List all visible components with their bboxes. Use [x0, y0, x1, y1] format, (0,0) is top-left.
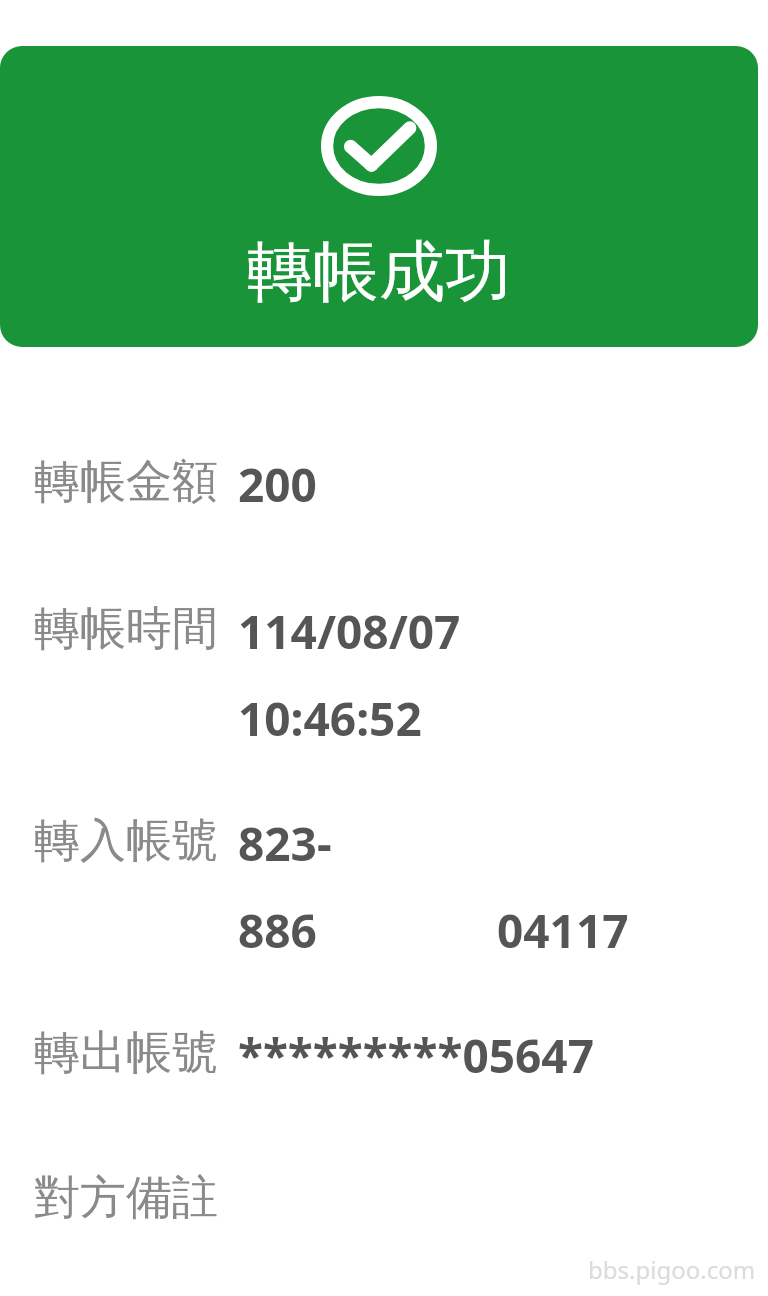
staticText: bbs.pigoo.com	[588, 1253, 756, 1286]
staticText: 轉帳成功	[247, 230, 511, 313]
staticText: 轉入帳號	[34, 812, 218, 870]
staticText: 轉出帳號	[34, 1024, 218, 1082]
staticText: 200	[238, 453, 317, 516]
button[interactable]: 轉帳金額	[34, 453, 740, 516]
button[interactable]: 轉帳時間	[34, 600, 740, 750]
staticText: 823-	[238, 812, 332, 875]
staticText: 轉帳金額	[34, 453, 218, 511]
button[interactable]: 轉入帳號	[34, 812, 740, 962]
staticText: 04117	[497, 899, 629, 962]
button[interactable]: 對方備註	[34, 1169, 740, 1227]
button[interactable]: 轉出帳號	[34, 1024, 740, 1087]
button[interactable]: Success	[0, 46, 758, 347]
staticText: *********05647	[238, 1024, 594, 1087]
staticText: 轉帳時間	[34, 600, 218, 658]
staticText: 114/08/07	[238, 600, 461, 663]
staticText: 886	[238, 899, 317, 962]
staticText: 10:46:52	[238, 687, 422, 750]
other: Success	[321, 96, 437, 196]
staticText: 對方備註	[34, 1169, 218, 1227]
